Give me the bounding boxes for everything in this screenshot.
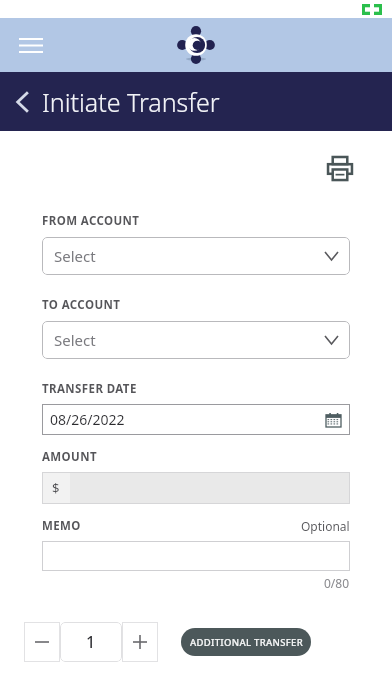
staticText: FROM ACCOUNT	[42, 213, 140, 229]
button[interactable]: Back	[0, 72, 392, 131]
button[interactable]: Print	[324, 153, 356, 185]
button[interactable]: Increase	[122, 622, 158, 662]
staticText: MEMO	[42, 518, 81, 534]
button[interactable]: 08/26/2022	[42, 404, 350, 435]
button[interactable]: Select	[42, 237, 350, 275]
button[interactable]: ADDITIONAL TRANSFER	[181, 628, 311, 656]
staticText: Select	[54, 246, 96, 266]
staticText: Initiate Transfer	[42, 85, 220, 119]
staticText: 08/26/2022	[50, 410, 125, 429]
staticText: Select	[54, 330, 96, 350]
button[interactable]	[42, 541, 350, 571]
staticText: TRANSFER DATE	[42, 381, 137, 397]
other: Pick date	[324, 411, 342, 429]
staticText: 0/80	[324, 575, 350, 591]
button[interactable]: Decrease	[24, 622, 60, 662]
staticText: ADDITIONAL TRANSFER	[190, 636, 303, 649]
staticText: Optional	[301, 518, 350, 534]
staticText: $	[52, 479, 60, 497]
other: Back	[16, 91, 30, 113]
staticText: TO ACCOUNT	[42, 297, 121, 313]
staticText: 1	[86, 631, 96, 653]
button[interactable]: $	[42, 472, 350, 504]
button[interactable]: Menu	[14, 28, 48, 62]
button[interactable]: Select	[42, 321, 350, 359]
staticText: AMOUNT	[42, 449, 97, 465]
button[interactable]: Home logo	[176, 25, 216, 65]
